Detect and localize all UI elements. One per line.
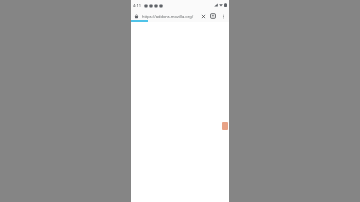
- staticText: 4:11: [133, 3, 141, 8]
- button[interactable]: Site information: [133, 13, 140, 20]
- staticText: https://addons.mozilla.org/en: [142, 14, 197, 19]
- button[interactable]: Tabs: [209, 12, 217, 20]
- button[interactable]: Stop loading: [199, 12, 207, 20]
- button[interactable]: Add-on thumbnail: [222, 122, 228, 130]
- button[interactable]: More options: [219, 12, 227, 20]
- button[interactable]: https://addons.mozilla.org/en: [141, 11, 198, 21]
